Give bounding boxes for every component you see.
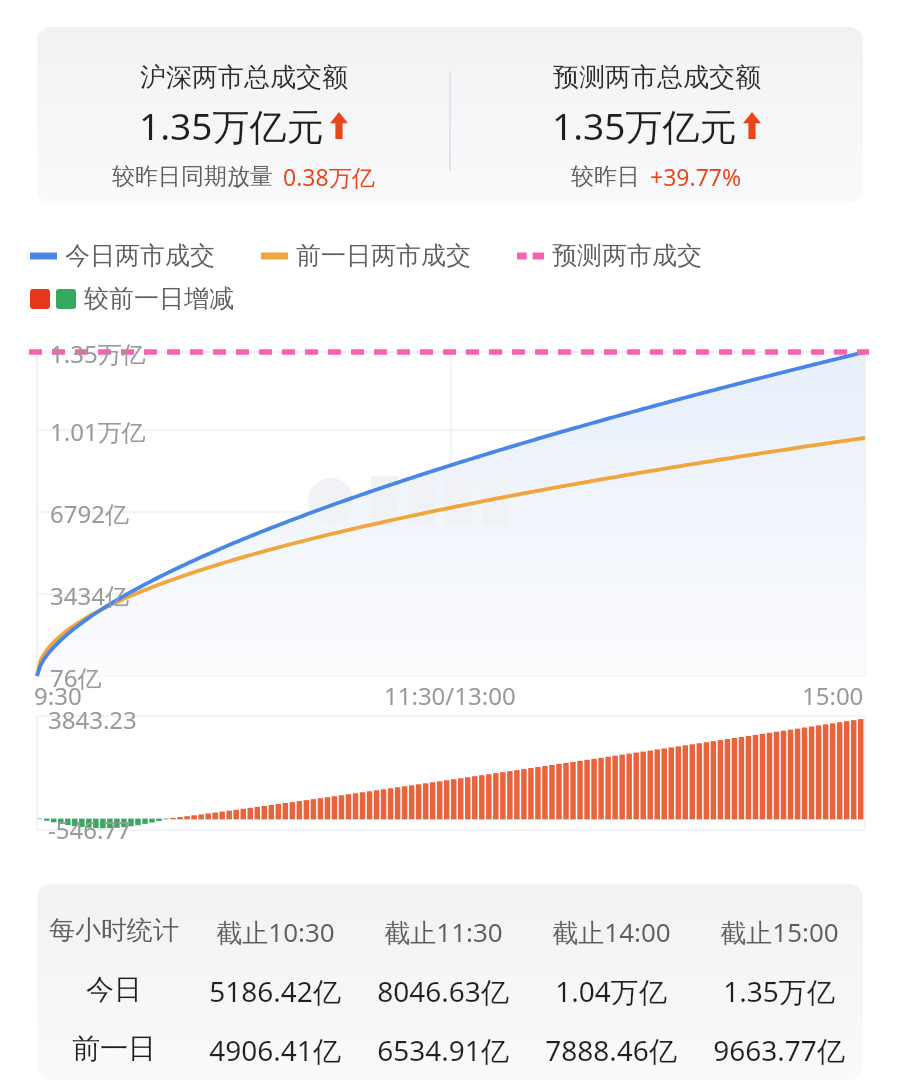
staticText: 每小时统计 — [49, 914, 179, 947]
staticText: 1.35万亿 — [50, 337, 146, 370]
staticText: 今日 — [86, 972, 142, 1007]
staticText: 前一日两市成交 — [296, 240, 471, 271]
staticText: 截止11:30 — [384, 914, 503, 950]
staticText: 1.04万亿 — [555, 972, 667, 1010]
staticText: 预测两市成交 — [552, 240, 702, 271]
staticText: 3434亿 — [50, 579, 129, 612]
staticText: 9663.77亿 — [713, 1031, 845, 1069]
button[interactable]: 两市成交额走势图 — [0, 330, 900, 840]
staticText: 5186.42亿 — [209, 972, 341, 1010]
staticText: 今日两市成交 — [65, 240, 215, 271]
staticText: 较前一日增减 — [84, 283, 234, 314]
staticText: 6792亿 — [50, 497, 129, 530]
button[interactable]: 预测两市成交 — [517, 240, 702, 271]
staticText: 1.35万亿元 — [139, 100, 324, 151]
staticText: 较昨日 — [571, 162, 640, 191]
staticText: 7888.46亿 — [545, 1031, 677, 1069]
staticText: 3843.23 — [48, 703, 137, 736]
staticText: 前一日 — [72, 1031, 156, 1066]
staticText: 15:00 — [802, 679, 864, 712]
staticText: 较昨日同期放量 — [112, 162, 273, 191]
staticText: 76亿 — [50, 661, 102, 694]
button[interactable]: 沪深两市总成交额 — [37, 27, 863, 203]
button[interactable]: 前一日两市成交 — [261, 240, 471, 271]
staticText: 预测两市总成交额 — [553, 61, 761, 94]
button[interactable]: 每小时统计 — [37, 884, 863, 1080]
staticText: 8046.63亿 — [377, 972, 509, 1010]
button[interactable]: 今日两市成交 — [30, 240, 215, 271]
staticText: 6534.91亿 — [377, 1031, 509, 1069]
button[interactable]: 较前一日增减 — [30, 283, 234, 314]
staticText: -546.77 — [48, 813, 131, 846]
staticText: 9:30 — [34, 679, 82, 712]
staticText: 0.38万亿 — [283, 161, 375, 192]
staticText: 11:30/13:00 — [384, 679, 516, 712]
staticText: 1.01万亿 — [50, 415, 146, 448]
staticText: 沪深两市总成交额 — [140, 61, 348, 94]
staticText: 截止15:00 — [720, 914, 839, 950]
staticText: 截止14:00 — [552, 914, 671, 950]
staticText: 1.35万亿 — [723, 972, 835, 1010]
staticText: 1.35万亿元 — [552, 100, 737, 151]
staticText: +39.77% — [650, 161, 742, 192]
staticText: 4906.41亿 — [209, 1031, 341, 1069]
staticText: 截止10:30 — [216, 914, 335, 950]
